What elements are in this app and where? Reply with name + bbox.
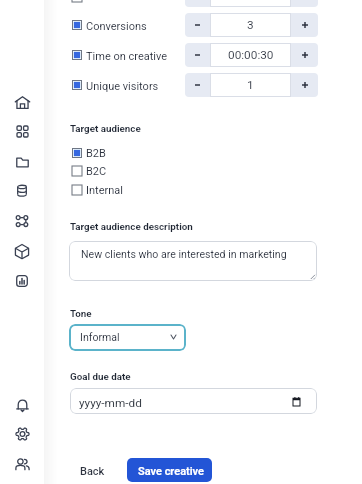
button[interactable]: 3 <box>210 13 291 37</box>
staticText: 00:00:30 <box>228 48 274 62</box>
button[interactable]: Workflows <box>9 208 35 234</box>
button[interactable]: Increase <box>291 13 318 37</box>
button[interactable]: Decrease <box>185 13 210 37</box>
button[interactable]: Database <box>9 178 35 204</box>
button[interactable] <box>69 241 317 281</box>
staticText: Conversions <box>86 20 147 33</box>
button[interactable]: Increase <box>291 43 318 67</box>
button[interactable] <box>127 458 212 482</box>
button[interactable]: Internal <box>72 184 123 195</box>
button[interactable]: Notifications <box>9 392 35 418</box>
staticText: Tone <box>70 308 92 319</box>
staticText: Internal <box>86 184 123 195</box>
button[interactable]: Settings <box>9 421 35 447</box>
button[interactable]: Pick date <box>70 388 317 414</box>
staticText: Target audience description <box>70 221 193 232</box>
staticText: B2C <box>86 165 107 176</box>
button[interactable]: Analytics <box>9 268 35 294</box>
other: Pick date <box>293 397 300 406</box>
staticText: Time on creative <box>86 50 168 63</box>
staticText: 1 <box>247 78 254 92</box>
button[interactable]: B2C <box>72 165 107 176</box>
staticText: Back <box>80 465 105 478</box>
button[interactable]: 1 <box>210 73 291 97</box>
button[interactable]: Decrease <box>185 43 210 67</box>
button[interactable]: Team <box>9 451 35 477</box>
staticText: yyyy-mm-dd <box>79 396 142 410</box>
button[interactable]: Products <box>9 238 35 264</box>
staticText: Unique visitors <box>86 80 159 93</box>
button[interactable]: Files <box>9 149 35 175</box>
button[interactable]: B2B <box>72 147 106 158</box>
button[interactable]: Decrease <box>185 73 210 97</box>
staticText: Target audience <box>70 123 141 134</box>
button[interactable]: Dashboard <box>9 118 35 144</box>
staticText: Goal due date <box>70 371 131 382</box>
staticText: B2B <box>86 147 106 158</box>
button[interactable]: Increase <box>291 73 318 97</box>
button[interactable]: 00:00:30 <box>210 43 291 67</box>
button[interactable]: Home <box>9 89 35 115</box>
staticText: 3 <box>247 18 254 32</box>
button[interactable] <box>69 324 186 351</box>
staticText: New clients who are interested in market… <box>81 248 287 260</box>
staticText: Save creative <box>138 465 204 478</box>
button[interactable] <box>74 459 109 481</box>
staticText: Informal <box>80 331 120 343</box>
